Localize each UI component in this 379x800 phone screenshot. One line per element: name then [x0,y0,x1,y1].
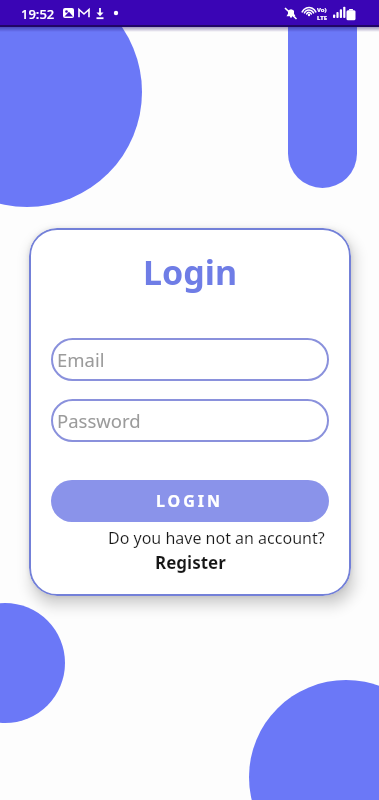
staticText: Email [57,347,105,372]
staticText: Login [143,249,238,295]
button[interactable]: Email [51,338,329,381]
staticText: Do you have not an account? [108,527,325,549]
button[interactable]: Register [29,551,351,574]
staticText: LTE [317,14,328,22]
staticText: Register [155,551,226,574]
staticText: 19:52 [21,5,55,23]
staticText: Vo) [317,6,327,14]
button[interactable]: LOGIN [51,480,329,522]
button[interactable]: Password [51,399,329,442]
staticText: Password [57,408,141,433]
staticText: LOGIN [156,490,224,512]
